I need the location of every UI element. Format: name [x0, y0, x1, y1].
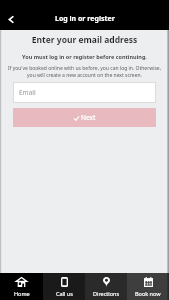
button[interactable]: Home: [0, 273, 43, 300]
button[interactable]: Email: [13, 82, 156, 103]
staticText: Directions: [93, 290, 120, 297]
staticText: Next: [81, 113, 96, 122]
staticText: Book now: [135, 290, 161, 297]
button[interactable]: Directions: [85, 273, 127, 300]
button[interactable]: Call us: [43, 273, 85, 300]
staticText: Home: [14, 290, 30, 297]
staticText: Email: [19, 88, 36, 97]
staticText: Enter your email address: [0, 34, 169, 46]
button[interactable]: Book now: [127, 273, 169, 300]
staticText: If you've booked online with us before, …: [0, 65, 169, 79]
staticText: Log in or register: [55, 14, 115, 24]
staticText: You must log in or register before conti…: [0, 53, 169, 60]
staticText: Call us: [56, 290, 73, 297]
button[interactable]: Back: [0, 0, 22, 30]
button[interactable]: Next: [13, 108, 156, 127]
